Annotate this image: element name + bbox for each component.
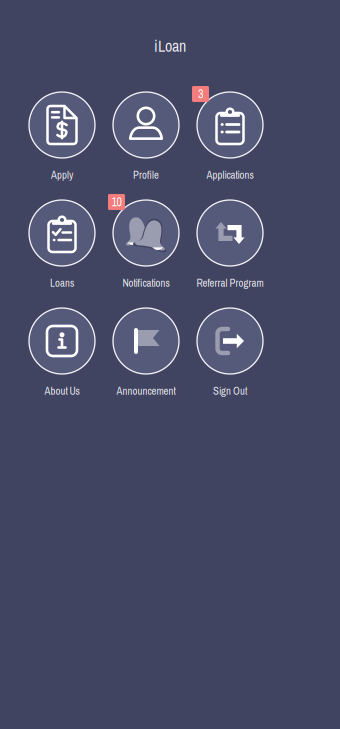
staticText: Sign Out bbox=[213, 384, 247, 398]
button[interactable]: Apply bbox=[0, 0, 340, 729]
button[interactable]: Sign Out bbox=[0, 0, 340, 729]
staticText: Notifications bbox=[122, 276, 169, 290]
button[interactable]: Profile bbox=[0, 0, 340, 729]
button[interactable]: About Us bbox=[0, 0, 340, 729]
button[interactable]: 10 bbox=[0, 0, 340, 729]
staticText: 3 bbox=[198, 86, 203, 102]
button[interactable]: Announcement bbox=[0, 0, 340, 729]
button[interactable]: 3 bbox=[0, 0, 340, 729]
staticText: iLoan bbox=[154, 35, 186, 57]
staticText: About Us bbox=[44, 384, 79, 398]
staticText: Applications bbox=[206, 168, 253, 182]
staticText: Announcement bbox=[116, 384, 175, 398]
button[interactable]: Loans bbox=[0, 0, 340, 729]
button[interactable]: Referral Program bbox=[0, 0, 340, 729]
staticText: 10 bbox=[111, 194, 121, 210]
staticText: Apply bbox=[51, 168, 73, 182]
staticText: Profile bbox=[133, 168, 159, 182]
staticText: Referral Program bbox=[196, 276, 263, 290]
staticText: Loans bbox=[50, 276, 74, 290]
